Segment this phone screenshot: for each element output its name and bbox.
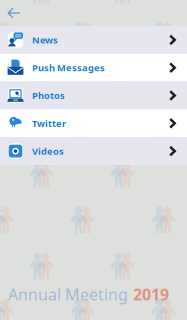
button[interactable]: Twitter — [0, 109, 187, 137]
staticText: 2019 — [133, 284, 169, 305]
staticText: Push Messages — [32, 61, 105, 74]
button[interactable]: News — [0, 26, 187, 54]
button[interactable]: Push Messages — [0, 54, 187, 82]
button[interactable]: Videos — [0, 137, 187, 165]
button[interactable]: Back — [0, 0, 22, 26]
button[interactable]: Photos — [0, 82, 187, 109]
staticText: Photos — [32, 89, 65, 102]
staticText: Twitter — [32, 117, 66, 129]
staticText: Annual Meeting — [8, 284, 128, 305]
staticText: Videos — [32, 145, 64, 157]
staticText: News — [32, 34, 58, 46]
